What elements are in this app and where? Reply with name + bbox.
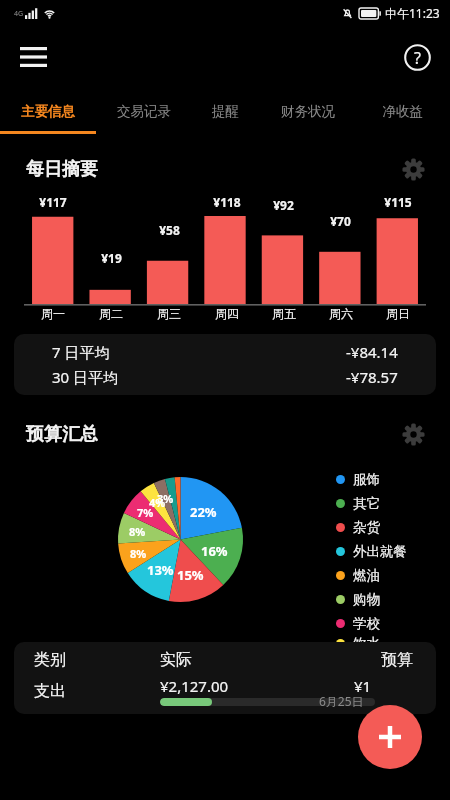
staticText: 周四 xyxy=(215,306,239,321)
staticText: 预算 xyxy=(381,650,413,670)
staticText: 实际 xyxy=(160,650,192,670)
staticText: 学校 xyxy=(353,615,380,632)
staticText: 提醒 xyxy=(212,103,239,120)
staticText: 13% xyxy=(147,561,174,579)
button[interactable]: 杂货 xyxy=(336,515,380,539)
staticText: 周五 xyxy=(272,306,296,321)
staticText: ? xyxy=(414,47,421,69)
staticText: 主要信息 xyxy=(21,103,75,120)
staticText: 周六 xyxy=(329,306,353,321)
staticText: 8% xyxy=(129,524,146,539)
button[interactable]: 交易记录 xyxy=(96,88,191,134)
staticText: 中午11:23 xyxy=(385,5,440,21)
staticText: ¥115 xyxy=(384,194,412,210)
staticText: ¥70 xyxy=(330,213,351,229)
button[interactable]: 类别 xyxy=(14,642,436,714)
button[interactable]: 其它 xyxy=(336,491,380,515)
button[interactable]: Add transaction xyxy=(358,705,422,769)
staticText: 4% xyxy=(149,495,166,510)
staticText: 支出 xyxy=(34,681,66,701)
staticText: 外出就餐 xyxy=(353,543,407,560)
button[interactable]: Settings xyxy=(396,417,430,451)
staticText: 净收益 xyxy=(382,103,423,120)
staticText: 周一 xyxy=(41,306,65,321)
button[interactable]: 提醒 xyxy=(191,88,260,134)
button[interactable]: 外出就餐 xyxy=(336,539,407,563)
button[interactable]: Menu xyxy=(12,36,54,78)
button[interactable]: 净收益 xyxy=(355,88,450,134)
button[interactable]: 燃油 xyxy=(336,563,380,587)
staticText: 类别 xyxy=(34,650,66,670)
staticText: 7 日平均 xyxy=(52,342,110,362)
staticText: 每日摘要 xyxy=(26,158,98,181)
staticText: 22% xyxy=(190,503,217,521)
staticText: ¥1 xyxy=(354,676,372,696)
button[interactable]: Settings xyxy=(396,152,430,186)
button[interactable]: 购物 xyxy=(336,587,380,611)
staticText: 15% xyxy=(177,566,204,584)
staticText: 4G xyxy=(14,9,24,19)
staticText: 3% xyxy=(157,491,174,506)
staticText: 燃油 xyxy=(353,567,380,584)
staticText: ¥118 xyxy=(213,194,241,210)
staticText: ¥58 xyxy=(159,222,180,238)
staticText: 财务状况 xyxy=(281,103,335,120)
button[interactable]: 饮水 xyxy=(336,635,380,652)
button[interactable]: 学校 xyxy=(336,611,380,635)
staticText: ¥92 xyxy=(273,197,294,213)
staticText: 16% xyxy=(201,542,228,560)
staticText: 其它 xyxy=(353,495,380,512)
staticText: 8% xyxy=(130,546,147,561)
staticText: 7% xyxy=(137,505,154,520)
staticText: -¥78.57 xyxy=(346,367,398,387)
staticText: 购物 xyxy=(353,591,380,608)
staticText: 6月25日 xyxy=(319,693,364,709)
staticText: 交易记录 xyxy=(117,103,171,120)
button[interactable]: 7 日平均 xyxy=(14,334,436,395)
button[interactable]: 主要信息 xyxy=(0,88,96,134)
button[interactable]: Help xyxy=(396,36,438,78)
staticText: -¥84.14 xyxy=(346,342,398,362)
staticText: 周二 xyxy=(99,306,123,321)
staticText: 杂货 xyxy=(353,519,380,536)
staticText: 预算汇总 xyxy=(26,423,98,446)
staticText: 服饰 xyxy=(353,471,380,488)
staticText: ¥117 xyxy=(39,194,67,210)
staticText: 饮水 xyxy=(353,635,380,652)
staticText: ¥19 xyxy=(101,250,122,266)
button[interactable]: 服饰 xyxy=(336,467,380,491)
staticText: ¥2,127.00 xyxy=(160,676,229,696)
staticText: 30 日平均 xyxy=(52,367,119,387)
staticText: 周三 xyxy=(157,306,181,321)
staticText: 周日 xyxy=(386,306,410,321)
button[interactable]: 财务状况 xyxy=(260,88,355,134)
